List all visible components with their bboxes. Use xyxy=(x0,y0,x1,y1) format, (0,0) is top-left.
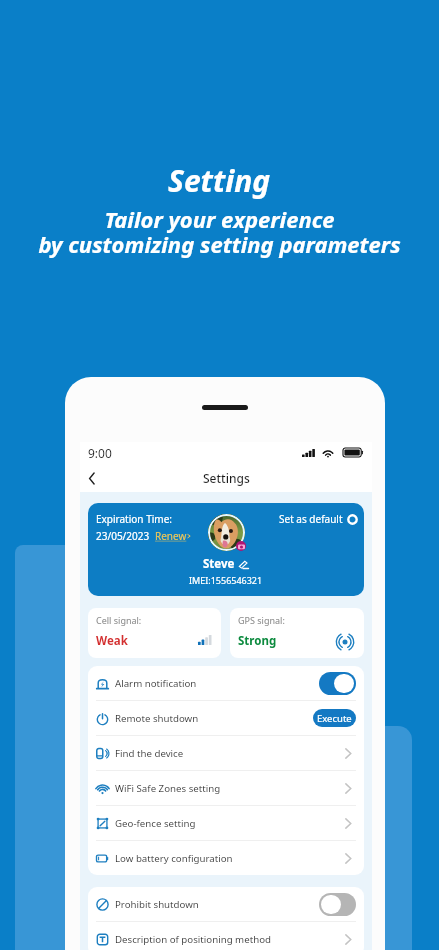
staticText: Weak xyxy=(96,633,128,649)
button[interactable]: Alarm notification toggle, on xyxy=(319,672,356,695)
button[interactable]: Prohibit shutdown xyxy=(88,887,364,921)
staticText: Remote shutdown xyxy=(115,712,199,725)
button[interactable]: Remote shutdown xyxy=(88,701,364,735)
button[interactable]: Prohibit shutdown toggle, off xyxy=(319,893,356,916)
button[interactable]: WiFi Safe Zones setting xyxy=(88,771,364,805)
staticText: Renew xyxy=(155,529,187,543)
staticText: Strong xyxy=(238,633,277,649)
staticText: 23/05/2023 xyxy=(96,529,150,543)
staticText: Description of positioning method xyxy=(115,933,271,946)
button[interactable]: Description of positioning method xyxy=(88,922,364,950)
staticText: Setting xyxy=(168,160,271,201)
staticText: Cell signal: xyxy=(96,614,142,626)
staticText: GPS signal: xyxy=(238,614,285,626)
staticText: Geo-fence setting xyxy=(115,817,196,830)
staticText: Settings xyxy=(203,470,250,486)
button[interactable]: Find the device xyxy=(88,736,364,770)
button[interactable]: Alarm notification xyxy=(88,666,364,700)
staticText: Execute xyxy=(317,712,352,725)
button[interactable]: Geo-fence setting xyxy=(88,806,364,840)
button[interactable]: Expiration Time: xyxy=(88,503,364,596)
button[interactable]: Execute xyxy=(313,709,356,727)
button[interactable]: Change photo xyxy=(236,541,246,551)
staticText: Prohibit shutdown xyxy=(115,898,199,911)
staticText: Tailor your experience by customizing se… xyxy=(38,204,401,259)
staticText: Low battery configuration xyxy=(115,852,233,865)
staticText: Find the device xyxy=(115,747,184,760)
staticText: WiFi Safe Zones setting xyxy=(115,782,221,795)
staticText: Expiration Time: xyxy=(96,512,172,526)
staticText: 9:00 xyxy=(88,445,112,461)
staticText: Alarm notification xyxy=(115,677,197,690)
staticText: Steve xyxy=(203,556,235,572)
button[interactable]: Set as default xyxy=(279,512,358,526)
staticText: Set as default xyxy=(279,512,343,526)
button[interactable]: Low battery configuration xyxy=(88,841,364,875)
button[interactable]: Cell signal: xyxy=(88,608,221,658)
button[interactable]: Renew xyxy=(155,529,191,543)
button[interactable]: GPS signal: xyxy=(230,608,364,658)
staticText: IMEI:1556546321 xyxy=(189,574,263,586)
button[interactable]: Back xyxy=(80,466,104,490)
